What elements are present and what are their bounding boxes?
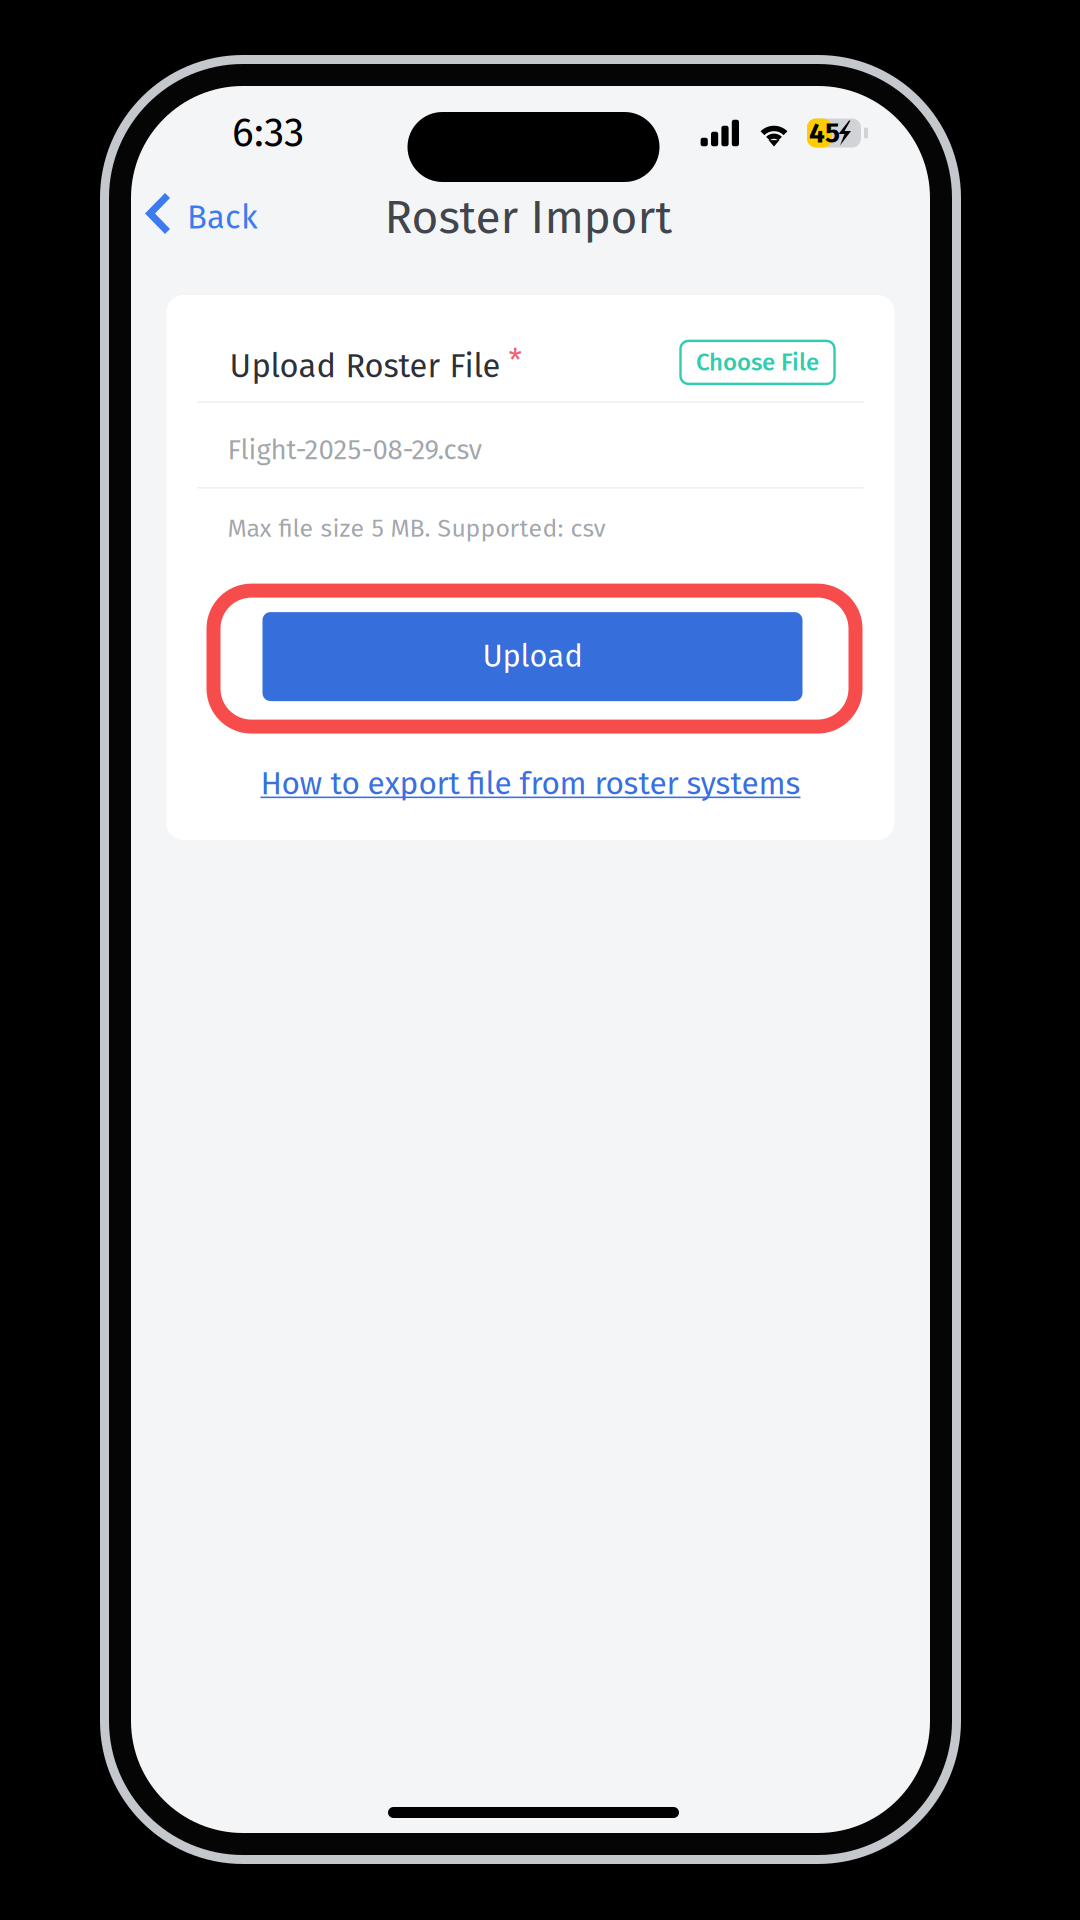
staticText: How to export file from roster systems <box>260 765 800 802</box>
button[interactable]: Choose File <box>678 326 832 369</box>
staticText: Flight-2025-08-29.csv <box>227 433 482 466</box>
staticText: Roster Import <box>384 190 672 245</box>
staticText: Choose File <box>696 348 819 377</box>
staticText: Upload Roster File <box>229 347 500 386</box>
staticText: * <box>500 342 521 379</box>
staticText: Upload <box>482 638 582 675</box>
staticText: Max file size 5 MB. Supported: csv <box>227 514 605 543</box>
button[interactable]: Upload <box>264 614 804 703</box>
button[interactable]: How to export file from roster systems <box>260 760 800 816</box>
staticText: Back <box>187 198 258 237</box>
button[interactable]: Back <box>131 184 284 250</box>
staticText: 6:33 <box>232 109 304 157</box>
staticText: 45 <box>809 116 840 150</box>
